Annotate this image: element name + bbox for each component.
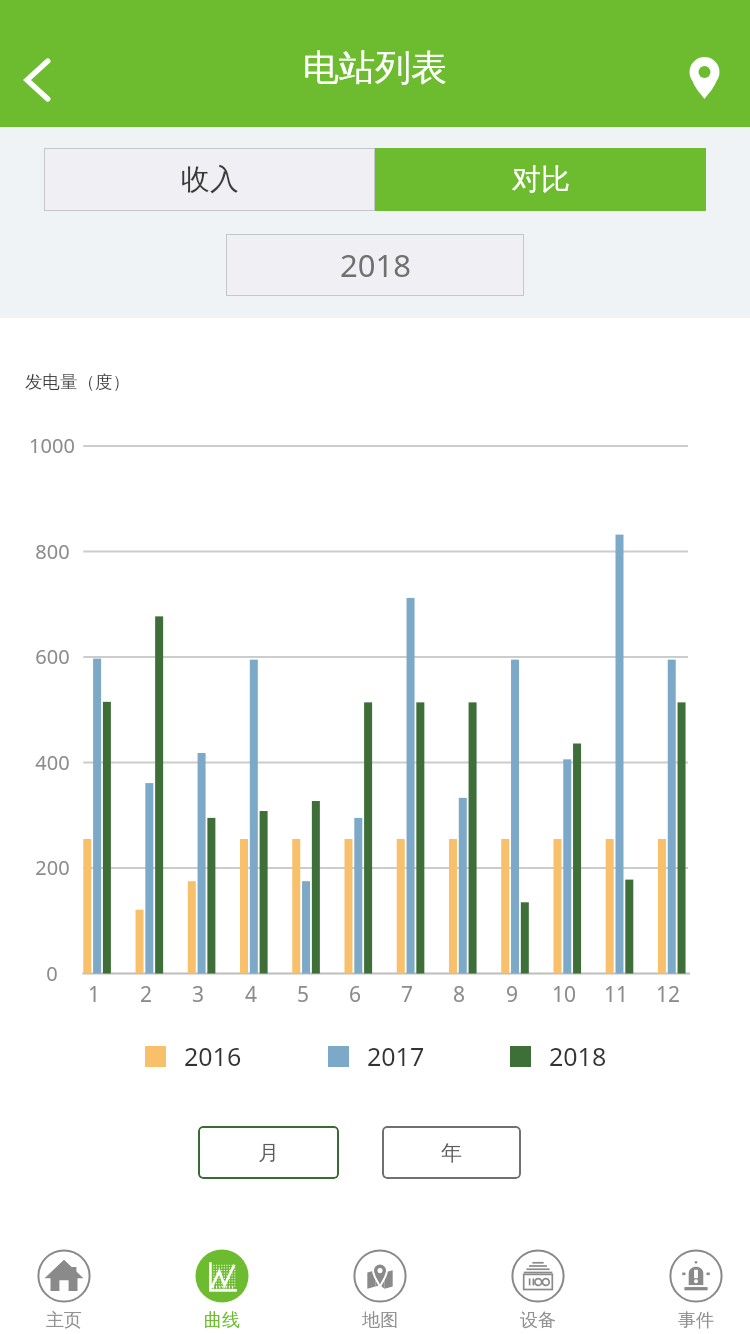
- staticText: 1: [88, 980, 101, 1009]
- staticText: 主页: [46, 1309, 82, 1332]
- staticText: 7: [401, 980, 414, 1009]
- button[interactable]: 对比: [375, 148, 706, 211]
- button[interactable]: 收入: [44, 148, 375, 211]
- button[interactable]: 月: [198, 1126, 339, 1179]
- staticText: 2016: [184, 1039, 242, 1073]
- staticText: 2017: [367, 1039, 425, 1073]
- staticText: 6: [349, 980, 362, 1009]
- button[interactable]: 2018: [226, 234, 524, 296]
- staticText: 对比: [512, 161, 570, 198]
- staticText: 800: [35, 538, 70, 565]
- staticText: 2018: [549, 1039, 607, 1073]
- button[interactable]: 事件: [640, 1249, 750, 1332]
- staticText: 月: [258, 1140, 279, 1166]
- button[interactable]: 设备: [482, 1249, 594, 1332]
- button[interactable]: 主页: [8, 1249, 120, 1332]
- staticText: 600: [35, 643, 70, 670]
- staticText: 11: [604, 980, 629, 1009]
- staticText: 2018: [340, 244, 411, 286]
- staticText: 8: [453, 980, 466, 1009]
- staticText: 电站列表: [303, 45, 447, 90]
- staticText: 200: [35, 854, 70, 881]
- button[interactable]: 曲线: [166, 1249, 278, 1332]
- button[interactable]: Map location: [676, 40, 733, 97]
- staticText: 1000: [29, 432, 75, 459]
- staticText: 3: [192, 980, 205, 1009]
- staticText: 年: [441, 1140, 462, 1166]
- staticText: 9: [506, 980, 519, 1009]
- staticText: 5: [297, 980, 310, 1009]
- staticText: 事件: [678, 1309, 714, 1332]
- staticText: 2: [140, 980, 153, 1009]
- staticText: 0: [46, 960, 58, 987]
- staticText: 10: [552, 980, 577, 1009]
- staticText: 收入: [181, 161, 239, 198]
- button[interactable]: 地图: [324, 1249, 436, 1332]
- button[interactable]: 年: [382, 1126, 521, 1179]
- staticText: 4: [245, 980, 258, 1009]
- staticText: 设备: [520, 1309, 556, 1332]
- staticText: 地图: [362, 1309, 398, 1332]
- staticText: 发电量（度）: [25, 371, 130, 393]
- staticText: 12: [656, 980, 681, 1009]
- button[interactable]: Back: [5, 48, 69, 112]
- staticText: 400: [35, 749, 70, 776]
- staticText: 曲线: [204, 1309, 240, 1332]
